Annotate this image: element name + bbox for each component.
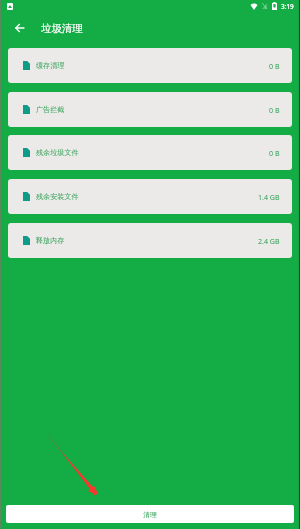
button[interactable]: 广告拦截 bbox=[8, 92, 292, 127]
staticText: 残余安装文件 bbox=[36, 192, 79, 201]
staticText: 0 B bbox=[269, 148, 280, 158]
staticText: 3:19 bbox=[281, 2, 294, 11]
staticText: 2.4 GB bbox=[258, 236, 280, 246]
button[interactable]: 清理 bbox=[6, 505, 294, 523]
staticText: 0 B bbox=[269, 61, 280, 71]
staticText: 清理 bbox=[143, 510, 157, 519]
staticText: 缓存清理 bbox=[36, 61, 65, 70]
staticText: 1.4 GB bbox=[258, 192, 280, 202]
button[interactable]: 残余安装文件 bbox=[8, 179, 292, 214]
staticText: 残余垃圾文件 bbox=[36, 148, 79, 157]
staticText: 垃圾清理 bbox=[41, 22, 83, 35]
staticText: 0 B bbox=[269, 105, 280, 115]
button[interactable]: 残余垃圾文件 bbox=[8, 135, 292, 170]
button[interactable]: 释放内存 bbox=[8, 223, 292, 258]
button[interactable]: 缓存清理 bbox=[8, 48, 292, 83]
staticText: 广告拦截 bbox=[36, 105, 65, 114]
button[interactable]: Back bbox=[7, 16, 31, 40]
staticText: 释放内存 bbox=[36, 236, 65, 245]
